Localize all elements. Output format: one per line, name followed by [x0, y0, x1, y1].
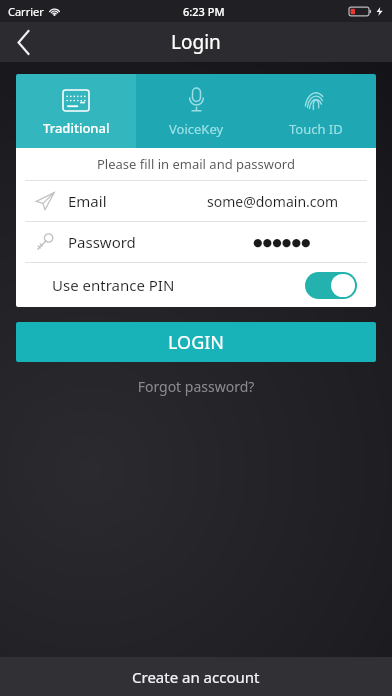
staticText: some@domain.com: [207, 192, 339, 211]
staticText: Login: [171, 29, 221, 55]
button[interactable]: Traditional: [16, 74, 136, 148]
staticText: Use entrance PIN: [52, 275, 175, 295]
staticText: ●●●●●●: [253, 236, 311, 249]
button[interactable]: VoiceKey: [136, 74, 256, 148]
button[interactable]: Touch ID: [256, 74, 376, 148]
staticText: Create an account: [132, 667, 260, 687]
staticText: Password: [68, 232, 136, 252]
staticText: 6:23 PM: [183, 4, 225, 19]
button[interactable]: Email: [25, 181, 367, 221]
staticText: Please fill in email and password: [97, 155, 295, 173]
button[interactable]: Password: [25, 222, 367, 262]
staticText: Traditional: [43, 119, 110, 137]
button[interactable]: Use entrance PIN: [16, 263, 376, 307]
staticText: Email: [68, 191, 107, 211]
staticText: VoiceKey: [169, 120, 224, 138]
button[interactable]: LOGIN: [16, 322, 376, 362]
button[interactable]: Back: [0, 22, 46, 62]
staticText: Touch ID: [289, 120, 343, 138]
button[interactable]: Create an account: [0, 657, 392, 696]
button[interactable]: Forgot password?: [0, 373, 392, 400]
staticText: LOGIN: [168, 330, 225, 355]
staticText: Carrier: [8, 4, 44, 19]
